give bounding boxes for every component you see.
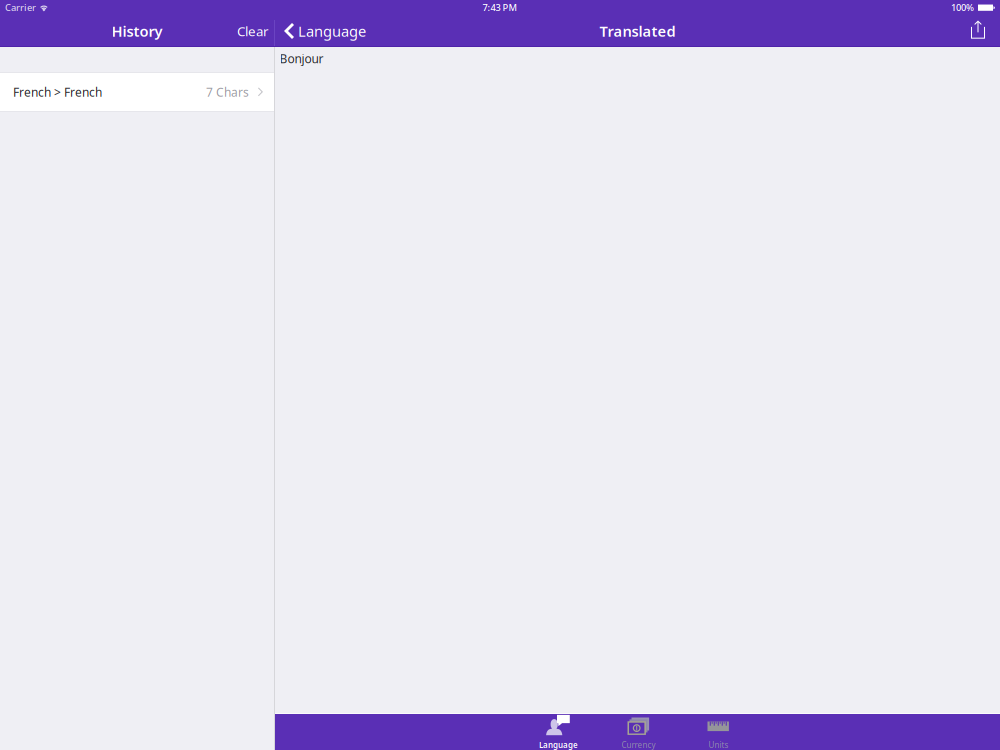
staticText: Clear: [237, 22, 269, 40]
button[interactable]: Language: [275, 20, 374, 46]
button[interactable]: Share: [961, 20, 1000, 46]
button[interactable]: French > French: [0, 73, 274, 111]
staticText: 100%: [951, 1, 974, 14]
staticText: Units: [708, 739, 728, 750]
staticText: Carrier: [5, 1, 36, 14]
button[interactable]: Clear: [227, 20, 274, 46]
button[interactable]: Units: [678, 714, 758, 750]
staticText: French > French: [13, 84, 102, 100]
button[interactable]: Currency: [598, 714, 678, 750]
button[interactable]: Language: [518, 714, 598, 750]
staticText: Bonjour: [279, 50, 323, 66]
staticText: 7:43 PM: [482, 1, 517, 14]
staticText: 7 Chars: [206, 84, 249, 100]
staticText: Language: [298, 21, 366, 41]
staticText: Language: [539, 739, 578, 750]
staticText: Currency: [621, 739, 655, 750]
staticText: History: [111, 21, 162, 41]
staticText: Translated: [599, 21, 675, 41]
